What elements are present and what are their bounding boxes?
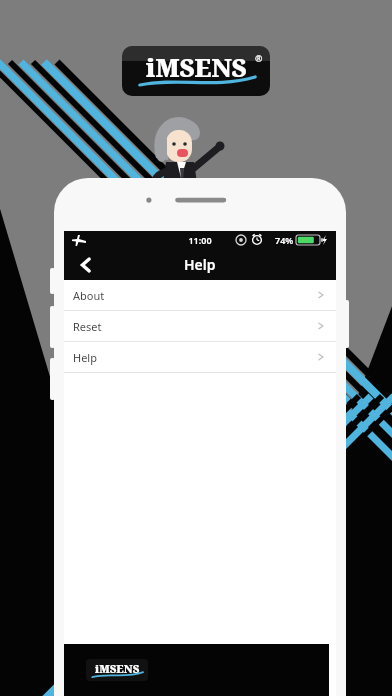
- button[interactable]: About: [64, 280, 336, 310]
- staticText: 11:00: [188, 234, 212, 246]
- staticText: 74%: [275, 234, 294, 246]
- staticText: iMSENS: [95, 661, 140, 676]
- staticText: ®: [255, 52, 263, 64]
- button[interactable]: Back: [64, 249, 108, 280]
- staticText: iMSENS: [146, 50, 247, 84]
- button[interactable]: Help: [64, 342, 336, 372]
- staticText: Reset: [73, 319, 102, 334]
- staticText: Help: [184, 255, 216, 274]
- button[interactable]: Reset: [64, 311, 336, 341]
- staticText: Help: [73, 350, 97, 365]
- staticText: About: [73, 288, 105, 303]
